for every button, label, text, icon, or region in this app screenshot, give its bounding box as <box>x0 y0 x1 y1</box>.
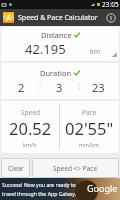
button[interactable]: Pace <box>60 101 119 153</box>
staticText: 02'55" <box>65 117 114 139</box>
staticText: Speed <> Pace <box>53 164 98 173</box>
staticText: Speed <box>21 108 40 117</box>
staticText: min/km <box>79 141 100 148</box>
staticText: 23:05 <box>102 0 119 9</box>
staticText: Clear <box>8 164 24 173</box>
staticText: km/h <box>23 141 37 148</box>
staticText: Success! Now you are ready to <box>2 181 76 188</box>
staticText: 42.195 <box>25 40 66 58</box>
button[interactable]: Clear <box>1 158 30 178</box>
button[interactable]: Info <box>102 9 119 26</box>
staticText: Pace <box>82 108 97 117</box>
staticText: : <box>39 80 42 91</box>
staticText: travel through the App Galaxy. <box>2 190 77 197</box>
button[interactable]: Success! Now you are ready to <box>0 178 120 200</box>
staticText: 2 <box>18 80 25 95</box>
button[interactable]: Distance <box>1 27 119 61</box>
staticText: Speed & Pace Calculator <box>18 13 98 23</box>
staticText: 20.52 <box>9 117 52 139</box>
staticText: km <box>90 47 101 57</box>
staticText: Duration <box>40 68 72 78</box>
button[interactable]: Duration <box>1 63 119 99</box>
staticText: 3 <box>56 80 63 95</box>
button[interactable]: Speed <box>1 101 59 153</box>
staticText: Google <box>87 182 118 194</box>
button[interactable]: Speed <> Pace <box>32 158 119 178</box>
staticText: : <box>78 80 81 91</box>
staticText: Distance <box>41 30 72 40</box>
staticText: 23 <box>92 80 105 95</box>
